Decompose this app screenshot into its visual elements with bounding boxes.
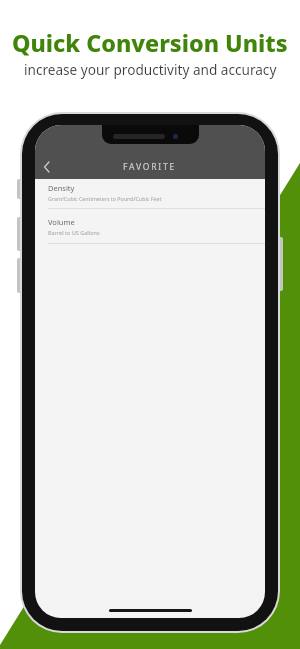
button[interactable]	[37, 157, 57, 177]
staticText: Gram/Cubic Centimeters to Pound/Cubic Fe…	[48, 195, 162, 202]
staticText: Density	[48, 183, 75, 193]
staticText: increase your productivity and accuracy	[24, 60, 277, 79]
button[interactable]: Density	[35, 179, 265, 209]
staticText: Quick Conversion Units	[12, 27, 288, 59]
staticText: Barrel to US Gallons	[48, 229, 100, 236]
staticText: FAVORITE	[123, 161, 177, 173]
button[interactable]: Volume	[35, 209, 265, 244]
staticText: Volume	[48, 217, 75, 227]
